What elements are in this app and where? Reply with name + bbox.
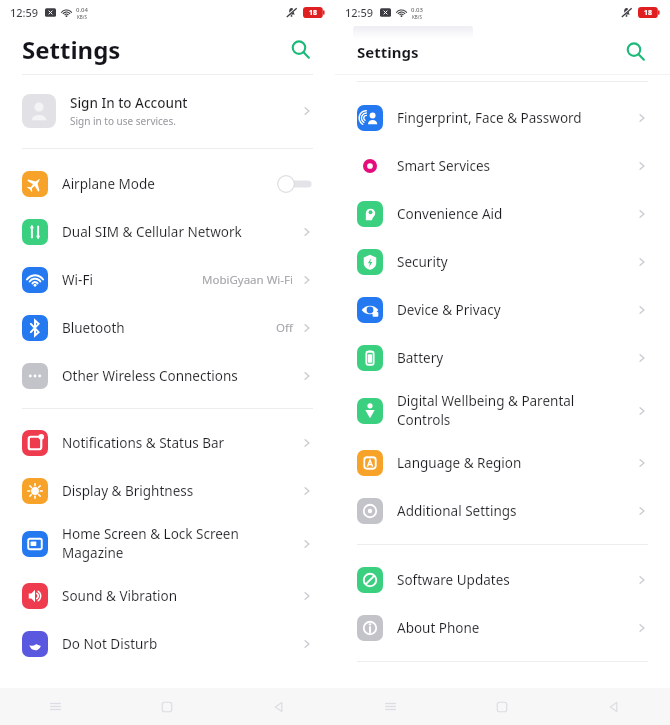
staticText: Airplane Mode: [62, 175, 155, 193]
staticText: Fingerprint, Face & Password: [397, 109, 582, 127]
staticText: Sign In to Account: [70, 94, 188, 112]
staticText: 18: [309, 8, 318, 18]
button[interactable]: Sound & Vibration: [0, 572, 335, 620]
staticText: Sign in to use services.: [70, 114, 176, 128]
staticText: Notifications & Status Bar: [62, 434, 225, 452]
button[interactable]: Do Not Disturb: [0, 620, 335, 668]
staticText: Magazine: [62, 544, 124, 562]
button[interactable]: Search settings: [283, 32, 317, 66]
button[interactable]: Device & Privacy: [335, 286, 670, 334]
staticText: 18: [644, 8, 653, 18]
staticText: 0.03: [411, 6, 423, 14]
staticText: Sound & Vibration: [62, 587, 178, 605]
button[interactable]: Fingerprint, Face & Password: [335, 94, 670, 142]
staticText: Other Wireless Connections: [62, 367, 238, 385]
staticText: Settings: [357, 42, 419, 62]
button[interactable]: About Phone: [335, 604, 670, 652]
button[interactable]: Other Wireless Connections: [0, 352, 335, 400]
button[interactable]: Airplane Mode: [0, 160, 335, 208]
button[interactable]: Home Screen & Lock Screen: [0, 515, 335, 572]
button[interactable]: Security: [335, 238, 670, 286]
staticText: Display & Brightness: [62, 482, 194, 500]
staticText: Settings: [22, 33, 121, 66]
staticText: Do Not Disturb: [62, 635, 158, 653]
button[interactable]: Bluetooth: [0, 304, 335, 352]
staticText: MobiGyaan Wi-Fi: [202, 272, 293, 288]
staticText: 0.04: [76, 6, 88, 14]
staticText: Controls: [397, 411, 451, 429]
button[interactable]: Software Updates: [335, 556, 670, 604]
staticText: Digital Wellbeing & Parental: [397, 392, 575, 410]
staticText: Home Screen & Lock Screen: [62, 525, 239, 543]
staticText: 12:59: [345, 5, 374, 20]
staticText: KB/S: [412, 14, 422, 20]
staticText: Software Updates: [397, 571, 510, 589]
staticText: KB/S: [77, 14, 87, 20]
button[interactable]: Display & Brightness: [0, 467, 335, 515]
button[interactable]: Digital Wellbeing & Parental: [335, 382, 670, 439]
button[interactable]: Notifications & Status Bar: [0, 419, 335, 467]
button[interactable]: Language & Region: [335, 439, 670, 487]
button[interactable]: Sign In to Account: [0, 83, 335, 139]
staticText: About Phone: [397, 619, 480, 637]
button[interactable]: Search settings: [618, 34, 652, 68]
staticText: Dual SIM & Cellular Network: [62, 223, 242, 241]
button[interactable]: Additional Settings: [335, 487, 670, 535]
staticText: Security: [397, 253, 448, 271]
staticText: Wi-Fi: [62, 271, 93, 289]
staticText: Convenience Aid: [397, 205, 503, 223]
staticText: Device & Privacy: [397, 301, 501, 319]
button[interactable]: Wi-Fi: [0, 256, 335, 304]
button[interactable]: Smart Services: [335, 142, 670, 190]
staticText: 12:59: [10, 5, 39, 20]
button[interactable]: Airplane Mode toggle: [277, 175, 313, 193]
button[interactable]: Battery: [335, 334, 670, 382]
staticText: Bluetooth: [62, 319, 125, 337]
staticText: Smart Services: [397, 157, 491, 175]
staticText: Off: [276, 320, 293, 336]
staticText: Additional Settings: [397, 502, 517, 520]
button[interactable]: Dual SIM & Cellular Network: [0, 208, 335, 256]
staticText: Language & Region: [397, 454, 522, 472]
staticText: Battery: [397, 349, 444, 367]
button[interactable]: Convenience Aid: [335, 190, 670, 238]
